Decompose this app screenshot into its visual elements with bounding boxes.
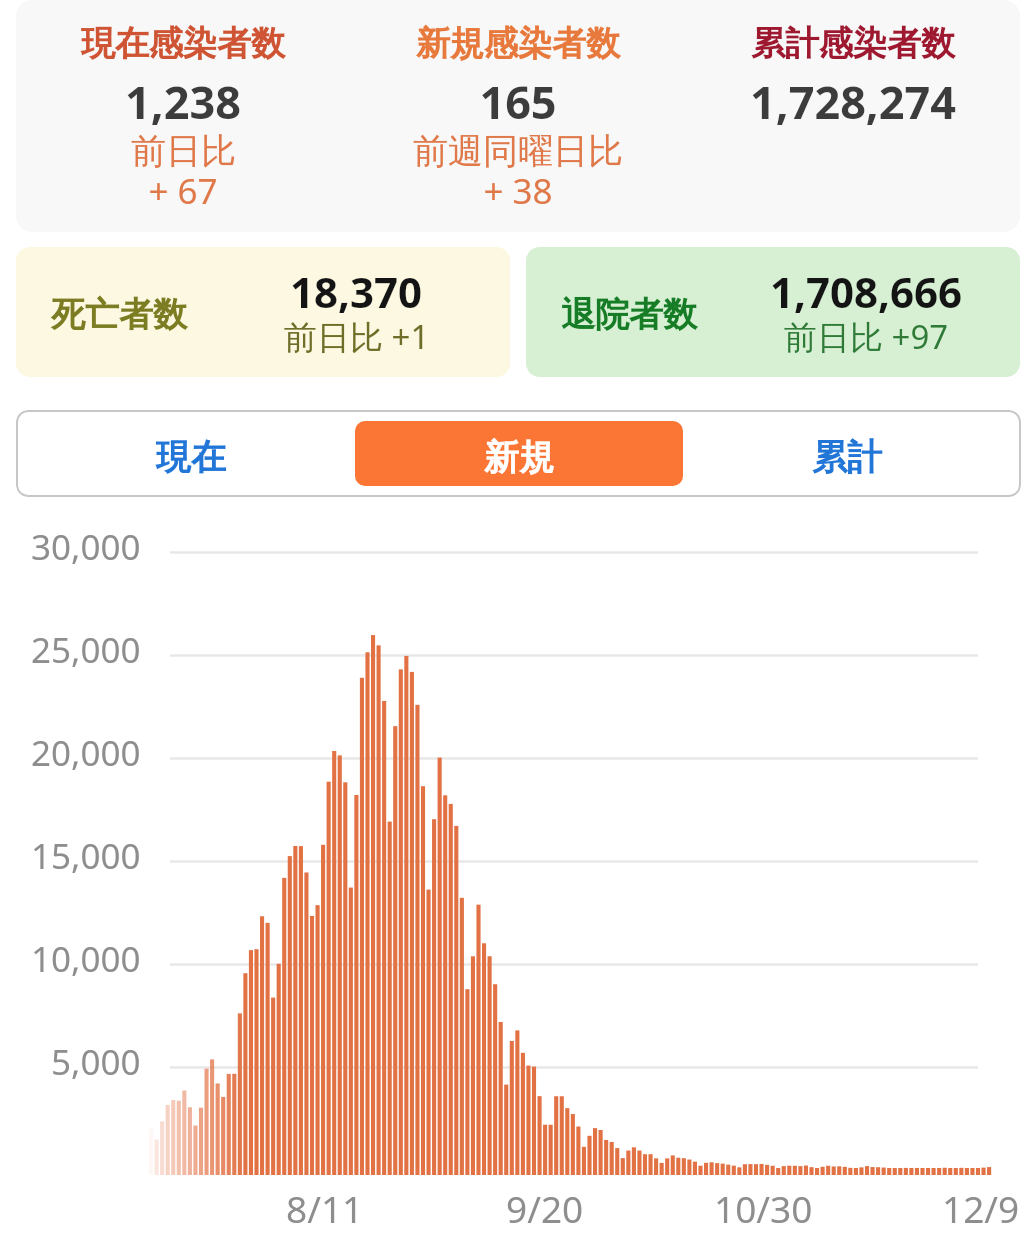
staticText: 10,000 [31,935,141,983]
staticText: 18,370 [290,263,423,320]
staticText: 20,000 [31,729,141,777]
staticText: 前日比 +1 [284,314,430,359]
staticText: 前日比 [131,129,236,173]
staticText: 現在 [156,435,226,479]
staticText: 1,238 [125,71,241,132]
staticText: 15,000 [31,832,141,880]
staticText: 5,000 [51,1038,141,1086]
button[interactable]: 死亡者数 [16,247,510,377]
staticText: 8/11 [286,1183,364,1233]
staticText: 新規感染者数 [416,22,620,65]
staticText: 165 [479,71,557,132]
staticText: 30,000 [31,523,141,571]
staticText: 9/20 [506,1183,584,1233]
button[interactable]: 現在感染者数 [16,0,350,232]
staticText: 累計感染者数 [751,22,955,65]
staticText: + 67 [148,167,218,215]
button[interactable]: 新規感染者数 [350,0,685,232]
staticText: 前週同曜日比 [413,129,623,173]
staticText: 1,708,666 [770,263,963,320]
button[interactable]: 新規 [355,421,683,486]
staticText: 現在感染者数 [81,22,285,65]
button[interactable]: 現在 [26,421,355,486]
staticText: 10/30 [714,1183,813,1233]
staticText: 1,728,274 [750,71,956,132]
staticText: 前日比 +97 [784,314,949,359]
staticText: 死亡者数 [51,293,187,336]
staticText: + 38 [483,167,553,215]
staticText: 新規 [484,435,554,479]
button[interactable]: 累計 [683,421,1011,486]
staticText: 退院者数 [561,293,697,336]
button[interactable]: 退院者数 [526,247,1020,377]
button[interactable]: 累計感染者数 [685,0,1020,232]
staticText: 25,000 [31,626,141,674]
staticText: 12/9 [942,1183,1020,1233]
staticText: 累計 [812,435,882,479]
